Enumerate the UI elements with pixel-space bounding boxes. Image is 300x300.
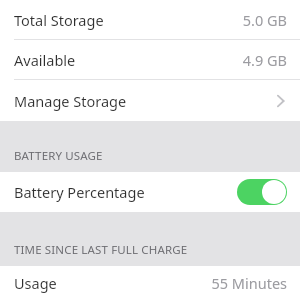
button[interactable]: Battery Percentage bbox=[0, 172, 300, 212]
staticText: 55 Minutes bbox=[211, 273, 287, 293]
button[interactable]: Manage Storage bbox=[0, 80, 300, 121]
other: Open Manage Storage bbox=[275, 93, 287, 109]
staticText: Manage Storage bbox=[14, 91, 127, 111]
button[interactable]: Battery Percentage, on bbox=[237, 179, 287, 205]
staticText: TIME SINCE LAST FULL CHARGE bbox=[14, 242, 188, 258]
button[interactable]: Total Storage bbox=[0, 0, 300, 40]
button[interactable]: Usage bbox=[0, 266, 300, 300]
staticText: 5.0 GB bbox=[242, 10, 287, 30]
staticText: Available bbox=[14, 50, 76, 70]
staticText: BATTERY USAGE bbox=[14, 148, 103, 164]
staticText: Usage bbox=[14, 273, 57, 293]
button[interactable]: Available bbox=[0, 40, 300, 80]
staticText: 4.9 GB bbox=[242, 50, 287, 70]
staticText: Battery Percentage bbox=[14, 182, 145, 202]
staticText: Total Storage bbox=[14, 10, 104, 30]
